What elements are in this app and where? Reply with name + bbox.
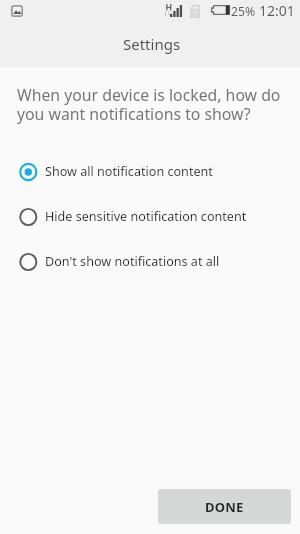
- button[interactable]: Show all notification content: [0, 149, 300, 194]
- staticText: DONE: [205, 498, 244, 516]
- other: Screenshot captured: [11, 5, 23, 17]
- staticText: Don't show notifications at all: [45, 253, 220, 270]
- staticText: 25%: [231, 3, 256, 20]
- button[interactable]: DONE: [158, 489, 291, 524]
- staticText: When your device is locked, how do you w…: [17, 84, 282, 125]
- staticText: Settings: [123, 34, 181, 54]
- staticText: Show all notification content: [45, 163, 213, 180]
- button[interactable]: Don't show notifications at all: [0, 239, 300, 284]
- staticText: Hide sensitive notification content: [45, 208, 247, 225]
- staticText: 12:01: [259, 1, 295, 20]
- button[interactable]: Hide sensitive notification content: [0, 194, 300, 239]
